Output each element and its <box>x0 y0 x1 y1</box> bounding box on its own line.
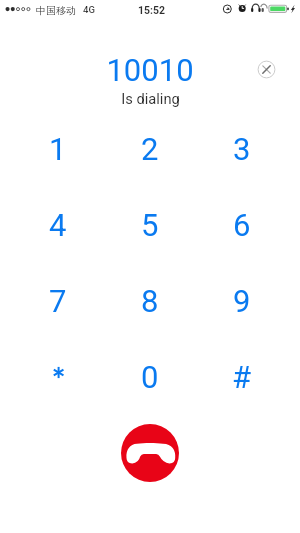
button[interactable]: 0 <box>104 339 196 415</box>
staticText: 1 <box>49 131 67 167</box>
staticText: 2 <box>141 131 159 167</box>
button[interactable]: # <box>196 339 288 415</box>
staticText: 中国移动 <box>36 4 76 17</box>
button[interactable]: End call <box>121 424 179 482</box>
staticText: 8 <box>141 283 159 319</box>
button[interactable]: star <box>12 339 104 415</box>
button[interactable]: 7 <box>12 263 104 339</box>
button[interactable]: Clear <box>257 60 276 79</box>
staticText: 10010 <box>106 52 194 88</box>
staticText: 5 <box>141 207 159 243</box>
staticText: 6 <box>233 207 251 243</box>
staticText: # <box>232 359 252 395</box>
button[interactable]: 2 <box>104 111 196 187</box>
staticText: Is dialing <box>121 90 180 107</box>
button[interactable]: 4 <box>12 187 104 263</box>
staticText: 4G <box>83 4 95 15</box>
button[interactable]: 5 <box>104 187 196 263</box>
staticText: 0 <box>141 359 159 395</box>
staticText: 3 <box>233 131 251 167</box>
button[interactable]: 1 <box>12 111 104 187</box>
button[interactable]: 6 <box>196 187 288 263</box>
staticText: 15:52 <box>138 4 166 16</box>
staticText: 7 <box>49 283 67 319</box>
button[interactable]: 8 <box>104 263 196 339</box>
staticText: 9 <box>233 283 251 319</box>
staticText: 4 <box>49 207 67 243</box>
button[interactable]: 3 <box>196 111 288 187</box>
button[interactable]: 9 <box>196 263 288 339</box>
